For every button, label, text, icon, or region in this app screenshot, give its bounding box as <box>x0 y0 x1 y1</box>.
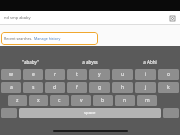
staticText: d <box>53 84 57 91</box>
staticText: f <box>76 84 78 91</box>
button[interactable]: r <box>45 69 65 80</box>
button[interactable]: n <box>115 95 135 106</box>
button[interactable]: u <box>112 69 133 80</box>
button[interactable]: j <box>135 82 156 93</box>
staticText: a abyss <box>82 59 98 65</box>
staticText: a <box>10 84 13 91</box>
button[interactable]: Symbols <box>1 108 17 118</box>
staticText: g <box>98 84 102 91</box>
staticText: space <box>84 110 96 116</box>
staticText: o <box>167 71 171 78</box>
button[interactable]: v <box>71 95 91 106</box>
button[interactable]: w <box>1 69 21 80</box>
staticText: nd smp ababy <box>4 15 168 20</box>
button[interactable]: a <box>1 82 21 93</box>
button[interactable]: k <box>158 82 179 93</box>
staticText: u <box>121 71 125 78</box>
button[interactable]: d <box>45 82 65 93</box>
staticText: v <box>80 97 83 104</box>
staticText: e <box>32 71 35 78</box>
button[interactable]: "ababy" <box>0 56 60 68</box>
button[interactable]: h <box>112 82 133 93</box>
button[interactable]: i <box>135 69 156 80</box>
staticText: "ababy" <box>22 59 39 65</box>
staticText: m <box>145 97 150 104</box>
staticText: r <box>54 71 57 78</box>
button[interactable]: nd smp ababy <box>0 11 180 24</box>
button[interactable]: f <box>67 82 87 93</box>
staticText: n <box>123 97 127 104</box>
button[interactable]: y <box>89 69 110 80</box>
button[interactable]: Search <box>163 108 179 118</box>
button[interactable]: space <box>19 108 161 118</box>
button[interactable]: s <box>23 82 43 93</box>
staticText: t <box>76 71 78 78</box>
staticText: z <box>16 97 19 104</box>
button[interactable]: Recent searches. <box>1 32 98 45</box>
staticText: j <box>145 84 147 91</box>
button[interactable]: g <box>89 82 110 93</box>
staticText: w <box>9 71 13 78</box>
staticText: x <box>37 97 40 104</box>
staticText: s <box>32 84 35 91</box>
staticText: Recent searches. <box>4 36 34 41</box>
staticText: c <box>58 97 61 104</box>
staticText: k <box>167 84 170 91</box>
staticText: y <box>98 71 101 78</box>
button[interactable]: b <box>93 95 113 106</box>
button[interactable]: m <box>137 95 157 106</box>
button[interactable]: c <box>50 95 69 106</box>
button[interactable]: a Abhi <box>120 56 180 68</box>
button[interactable]: t <box>67 69 87 80</box>
staticText: a Abhi <box>143 59 157 65</box>
button[interactable]: Camera search <box>168 14 176 22</box>
button[interactable]: x <box>29 95 48 106</box>
staticText: i <box>145 71 147 78</box>
button[interactable]: o <box>158 69 179 80</box>
staticText: h <box>121 84 125 91</box>
button[interactable]: e <box>23 69 43 80</box>
button[interactable]: a abyss <box>60 56 120 68</box>
staticText: Manage history <box>34 36 61 41</box>
button[interactable]: z <box>8 95 27 106</box>
staticText: b <box>101 97 105 104</box>
